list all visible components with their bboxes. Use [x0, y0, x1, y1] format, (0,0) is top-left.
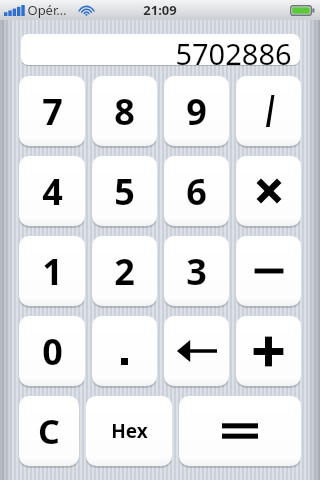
staticText: 5702886 — [175, 34, 292, 65]
button[interactable]: 2 — [92, 236, 157, 306]
staticText: Hex — [111, 418, 148, 444]
staticText: 5 — [114, 167, 135, 216]
staticText: 0 — [42, 327, 63, 376]
button[interactable]: 6 — [164, 156, 229, 226]
staticText: 8 — [114, 87, 135, 136]
button[interactable]: 9 — [164, 76, 229, 146]
staticText: 1 — [42, 247, 63, 296]
staticText: 4 — [42, 167, 63, 216]
button[interactable]: Divide — [236, 76, 301, 146]
button[interactable]: Minus — [236, 236, 301, 306]
button[interactable]: 8 — [92, 76, 157, 146]
button[interactable]: 1 — [19, 236, 85, 306]
staticText: 7 — [42, 87, 63, 136]
button[interactable]: Decimal point — [92, 316, 157, 386]
button[interactable]: 7 — [19, 76, 85, 146]
button[interactable]: Multiply — [236, 156, 301, 226]
staticText: 9 — [186, 87, 207, 136]
button[interactable]: Backspace — [164, 316, 229, 386]
staticText: C — [38, 408, 60, 454]
button[interactable]: 0 — [19, 316, 85, 386]
button[interactable]: C — [19, 396, 79, 466]
button[interactable]: Plus — [236, 316, 301, 386]
button[interactable]: Hex — [86, 396, 172, 466]
staticText: 6 — [186, 167, 207, 216]
button[interactable]: 4 — [19, 156, 85, 226]
staticText: Opér… — [27, 1, 67, 19]
button[interactable]: Equals — [179, 396, 301, 466]
staticText: 21:09 — [143, 1, 177, 19]
staticText: 3 — [186, 247, 207, 296]
button[interactable]: 3 — [164, 236, 229, 306]
button[interactable]: 5 — [92, 156, 157, 226]
staticText: 2 — [114, 247, 135, 296]
